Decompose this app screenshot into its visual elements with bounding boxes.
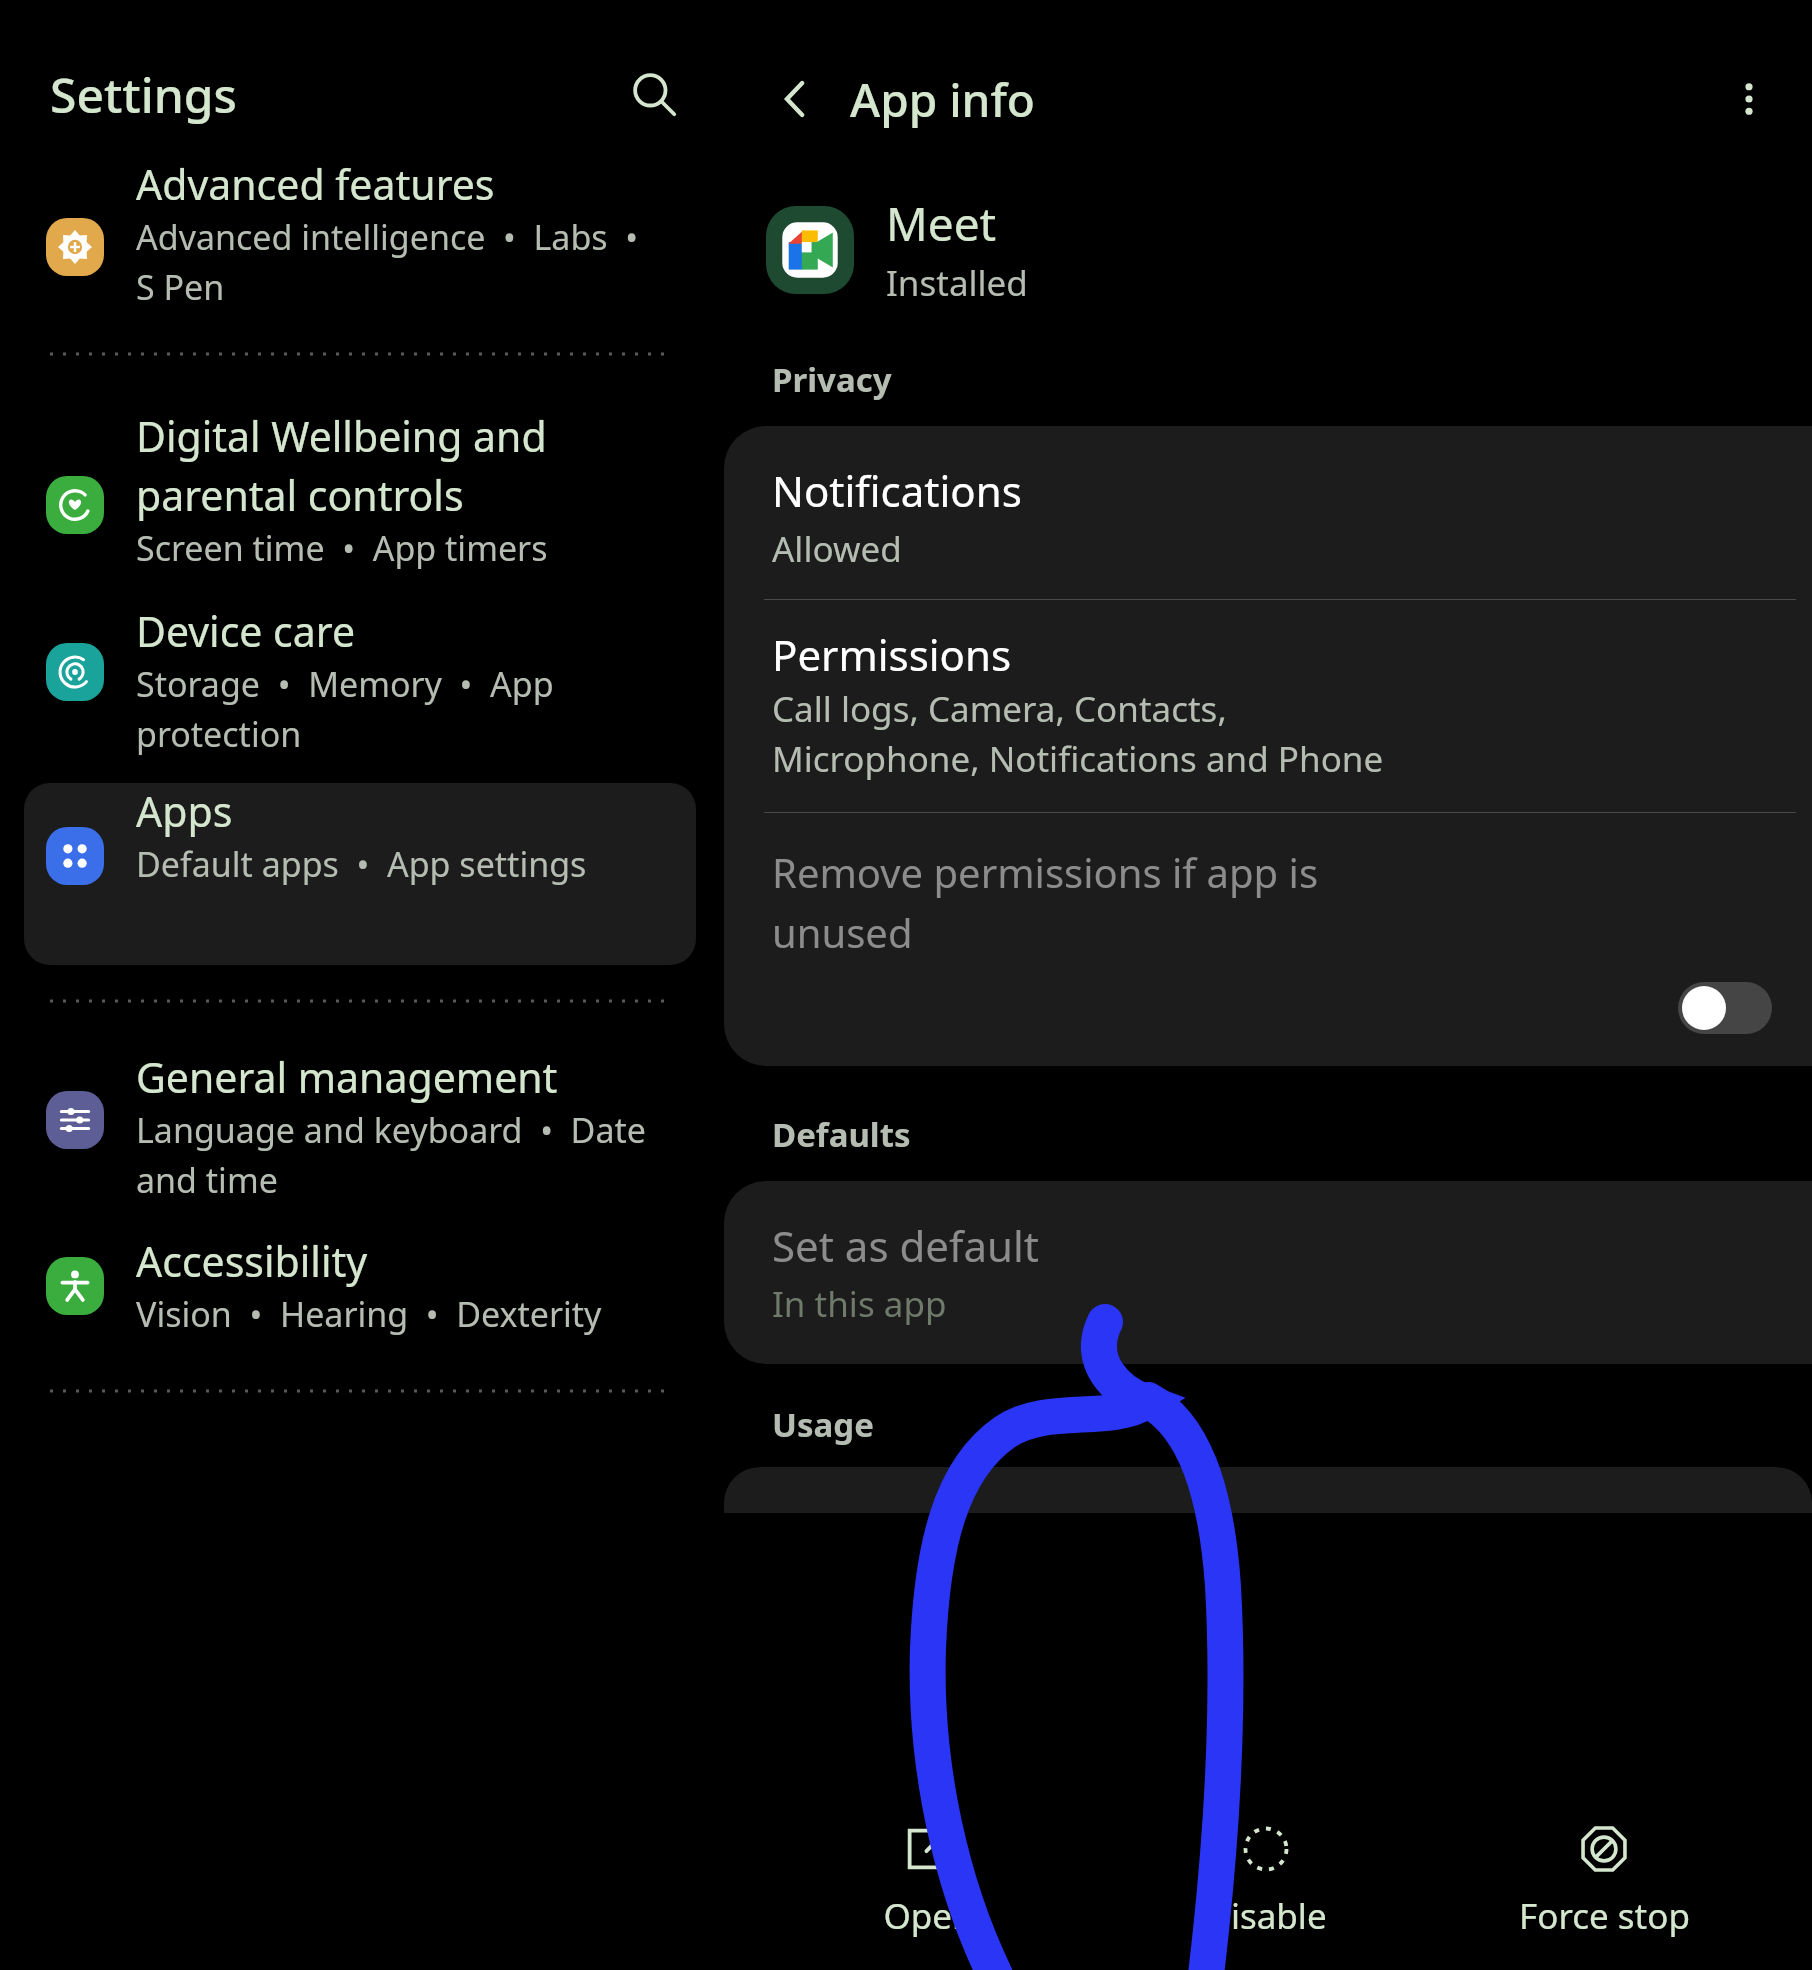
staticText: Language and keyboard • Date and time (136, 1107, 646, 1203)
button[interactable]: Digital Wellbeing and parental controls (0, 408, 720, 571)
staticText: Set as default (772, 1217, 1039, 1274)
button[interactable]: Remove permissions if app is unused togg… (1678, 982, 1772, 1034)
staticText: Digital Wellbeing and parental controls (136, 408, 547, 523)
button[interactable]: Back (762, 66, 828, 132)
button[interactable]: General management (0, 1049, 720, 1203)
staticText: Accessibility (136, 1233, 368, 1289)
staticText: Privacy (772, 357, 892, 402)
button[interactable]: Force stop (1474, 1810, 1734, 1952)
button[interactable]: Search (618, 58, 690, 130)
button[interactable]: Notifications (724, 426, 1812, 599)
button[interactable]: Accessibility (0, 1233, 720, 1337)
staticText: In this app (772, 1280, 947, 1328)
staticText: Defaults (772, 1112, 911, 1157)
staticText: Device care (136, 603, 356, 659)
staticText: Remove permissions if app is unused (772, 845, 1319, 960)
staticText: Apps (136, 783, 233, 839)
button[interactable]: Permissions (724, 600, 1812, 812)
staticText: App info (850, 68, 1035, 131)
staticText: Permissions (772, 626, 1012, 683)
staticText: Advanced intelligence • Labs • S Pen (136, 214, 639, 310)
button[interactable]: Apps (24, 783, 696, 965)
staticText: Settings (50, 62, 237, 127)
staticText: Call logs, Camera, Contacts, Microphone,… (772, 685, 1384, 782)
button[interactable]: Disable (1136, 1810, 1396, 1952)
staticText: Disable (1205, 1892, 1327, 1940)
staticText: Usage (772, 1402, 874, 1447)
staticText: Screen time • App timers (136, 525, 548, 571)
button[interactable]: Advanced features (0, 156, 720, 310)
staticText: Notifications (772, 462, 1022, 519)
staticText: Advanced features (136, 156, 495, 212)
staticText: Default apps • App settings (136, 841, 587, 887)
button[interactable]: Meet (720, 192, 1812, 307)
button[interactable]: Open (798, 1810, 1058, 1952)
staticText: Installed (886, 259, 1028, 307)
button[interactable]: Remove permissions if app is unused (724, 813, 1812, 960)
button[interactable]: More options (1716, 66, 1782, 132)
staticText: Meet (886, 192, 997, 255)
staticText: Open (883, 1892, 974, 1940)
button[interactable]: Set as default (724, 1181, 1812, 1364)
staticText: Allowed (772, 525, 902, 573)
staticText: Vision • Hearing • Dexterity (136, 1291, 602, 1337)
staticText: Storage • Memory • App protection (136, 661, 554, 757)
staticText: Force stop (1519, 1892, 1690, 1940)
button[interactable]: Device care (0, 603, 720, 757)
staticText: General management (136, 1049, 558, 1105)
